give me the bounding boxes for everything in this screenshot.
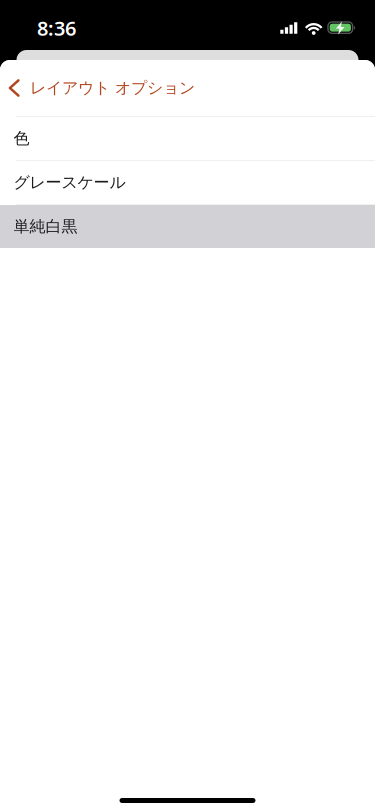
staticText: 8:36 — [37, 15, 76, 41]
staticText: レイアウト オプション — [30, 78, 195, 98]
button[interactable]: 色 — [0, 117, 375, 160]
staticText: グレースケール — [13, 173, 125, 192]
button[interactable]: グレースケール — [0, 161, 375, 204]
button[interactable]: レイアウト オプション — [0, 60, 207, 116]
staticText: 色 — [13, 129, 29, 148]
staticText: 単純白黒 — [13, 217, 77, 236]
button[interactable]: 単純白黒 — [0, 205, 375, 248]
